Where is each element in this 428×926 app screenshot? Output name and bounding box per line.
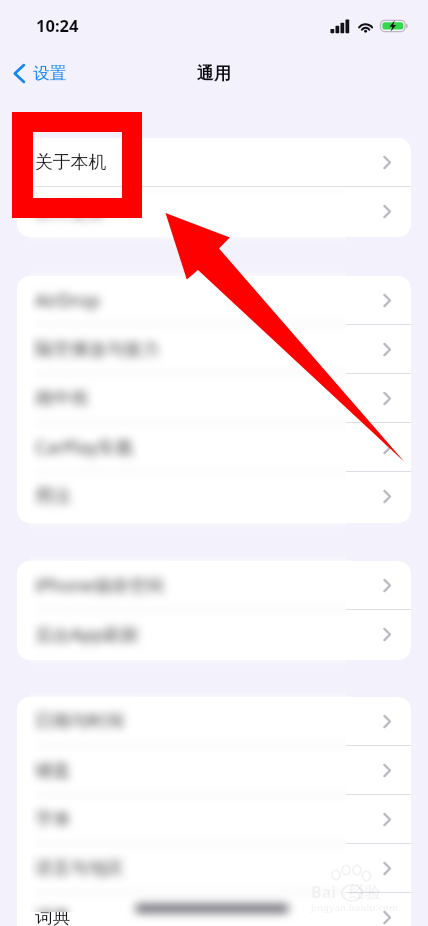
staticText: CarPlay车载 [35, 435, 134, 459]
staticText: 用法 [35, 485, 71, 507]
staticText: 日期与时间 [35, 710, 124, 732]
button[interactable]: 词典 [17, 893, 411, 926]
staticText: 10:24 [36, 14, 79, 36]
button[interactable]: 词典 [17, 893, 411, 926]
button[interactable]: 关于本机 [17, 138, 411, 186]
staticText: 通用 [197, 63, 231, 84]
button[interactable]: 字体 [17, 795, 411, 843]
button[interactable]: 字体 [17, 795, 411, 843]
button[interactable]: 用法 [17, 472, 411, 520]
staticText: iPhone储存空间 [35, 573, 165, 597]
staticText: 关于本机 [35, 151, 107, 173]
button[interactable]: 画中画 [17, 374, 411, 422]
staticText: 隔空播放与接力 [35, 338, 160, 360]
staticText: 设置 [33, 63, 66, 84]
button[interactable]: 关于本机 [17, 138, 411, 186]
staticText: 日期与时间 [35, 710, 124, 732]
staticText: 画中画 [35, 387, 89, 409]
staticText: 后台App刷新 [35, 622, 140, 646]
button[interactable]: 设置 [9, 57, 70, 90]
button[interactable]: 日期与时间 [17, 697, 411, 745]
staticText: 词典 [35, 906, 71, 926]
button[interactable]: 隔空播放与接力 [17, 325, 411, 373]
button[interactable]: 后台App刷新 [17, 610, 411, 658]
button[interactable]: CarPlay车载 [17, 423, 411, 471]
button[interactable]: AirDrop [17, 276, 411, 324]
staticText: 语言与地区 [35, 857, 124, 879]
staticText: 关于本机 [35, 151, 107, 173]
button[interactable]: 语言与地区 [17, 844, 411, 892]
staticText: CarPlay车载 [35, 435, 134, 459]
staticText: 语言与地区 [35, 857, 124, 879]
staticText: 词典 [35, 906, 71, 926]
button[interactable]: 日期与时间 [17, 697, 411, 745]
button[interactable]: CarPlay车载 [17, 423, 411, 471]
staticText: 软件更新 [35, 200, 107, 222]
staticText: 后台App刷新 [35, 622, 140, 646]
button[interactable]: 隔空播放与接力 [17, 325, 411, 373]
button[interactable]: 关于本机 [12, 112, 142, 218]
staticText: jingyan.baidu.com [311, 901, 399, 914]
button[interactable]: 画中画 [17, 374, 411, 422]
staticText: 用法 [35, 485, 71, 507]
staticText: 字体 [35, 808, 71, 830]
button[interactable]: iPhone储存空间 [17, 561, 411, 609]
button[interactable]: 软件更新 [17, 187, 411, 235]
staticText: 画中画 [35, 387, 89, 409]
staticText: 软件更新 [35, 200, 107, 222]
button[interactable]: 键盘 [17, 746, 411, 794]
staticText: AirDrop [35, 288, 101, 312]
staticText: iPhone储存空间 [35, 573, 165, 597]
staticText: AirDrop [35, 288, 101, 312]
staticText: 键盘 [35, 759, 71, 781]
button[interactable]: 软件更新 [17, 187, 411, 235]
button[interactable]: 键盘 [17, 746, 411, 794]
button[interactable]: 后台App刷新 [17, 610, 411, 658]
staticText: 键盘 [35, 759, 71, 781]
button[interactable]: 语言与地区 [17, 844, 411, 892]
staticText: Bai 经验 [311, 881, 381, 903]
button[interactable]: 用法 [17, 472, 411, 520]
button[interactable]: iPhone储存空间 [17, 561, 411, 609]
staticText: 隔空播放与接力 [35, 338, 160, 360]
staticText: 字体 [35, 808, 71, 830]
button[interactable]: AirDrop [17, 276, 411, 324]
